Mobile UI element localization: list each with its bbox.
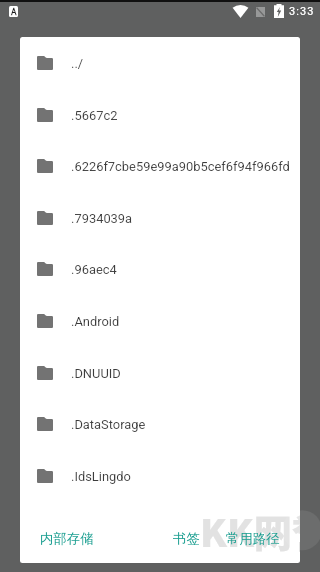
staticText: A: [11, 7, 17, 17]
button[interactable]: .DNUUID: [20, 347, 300, 399]
other: Wi-Fi: [233, 5, 248, 18]
staticText: .7934039a: [71, 211, 133, 226]
staticText: .DNUUID: [71, 366, 121, 381]
button[interactable]: 内部存储: [40, 530, 94, 547]
other: No SIM card: [256, 7, 265, 17]
button[interactable]: 书签: [173, 530, 200, 547]
staticText: ../: [71, 56, 84, 71]
button[interactable]: 常用路径: [226, 530, 280, 547]
staticText: .IdsLingdo: [71, 469, 131, 484]
button[interactable]: .6226f7cbe59e99a90b5cef6f94f966fd: [20, 140, 300, 192]
button[interactable]: .IdsLingdo: [20, 450, 300, 502]
button[interactable]: .5667c2: [20, 89, 300, 141]
other: Battery charging: [274, 4, 284, 18]
button[interactable]: .DataStorage: [20, 398, 300, 450]
staticText: 3:33: [289, 5, 315, 18]
button[interactable]: .96aec4: [20, 243, 300, 295]
button[interactable]: .7934039a: [20, 192, 300, 244]
button[interactable]: ../: [20, 37, 300, 89]
staticText: .Android: [71, 314, 120, 329]
staticText: .6226f7cbe59e99a90b5cef6f94f966fd: [71, 159, 290, 174]
staticText: .DataStorage: [71, 417, 146, 432]
staticText: .96aec4: [71, 262, 117, 277]
staticText: .5667c2: [71, 108, 118, 123]
button[interactable]: .Android: [20, 295, 300, 347]
staticText: KK网誉: [200, 503, 300, 558]
